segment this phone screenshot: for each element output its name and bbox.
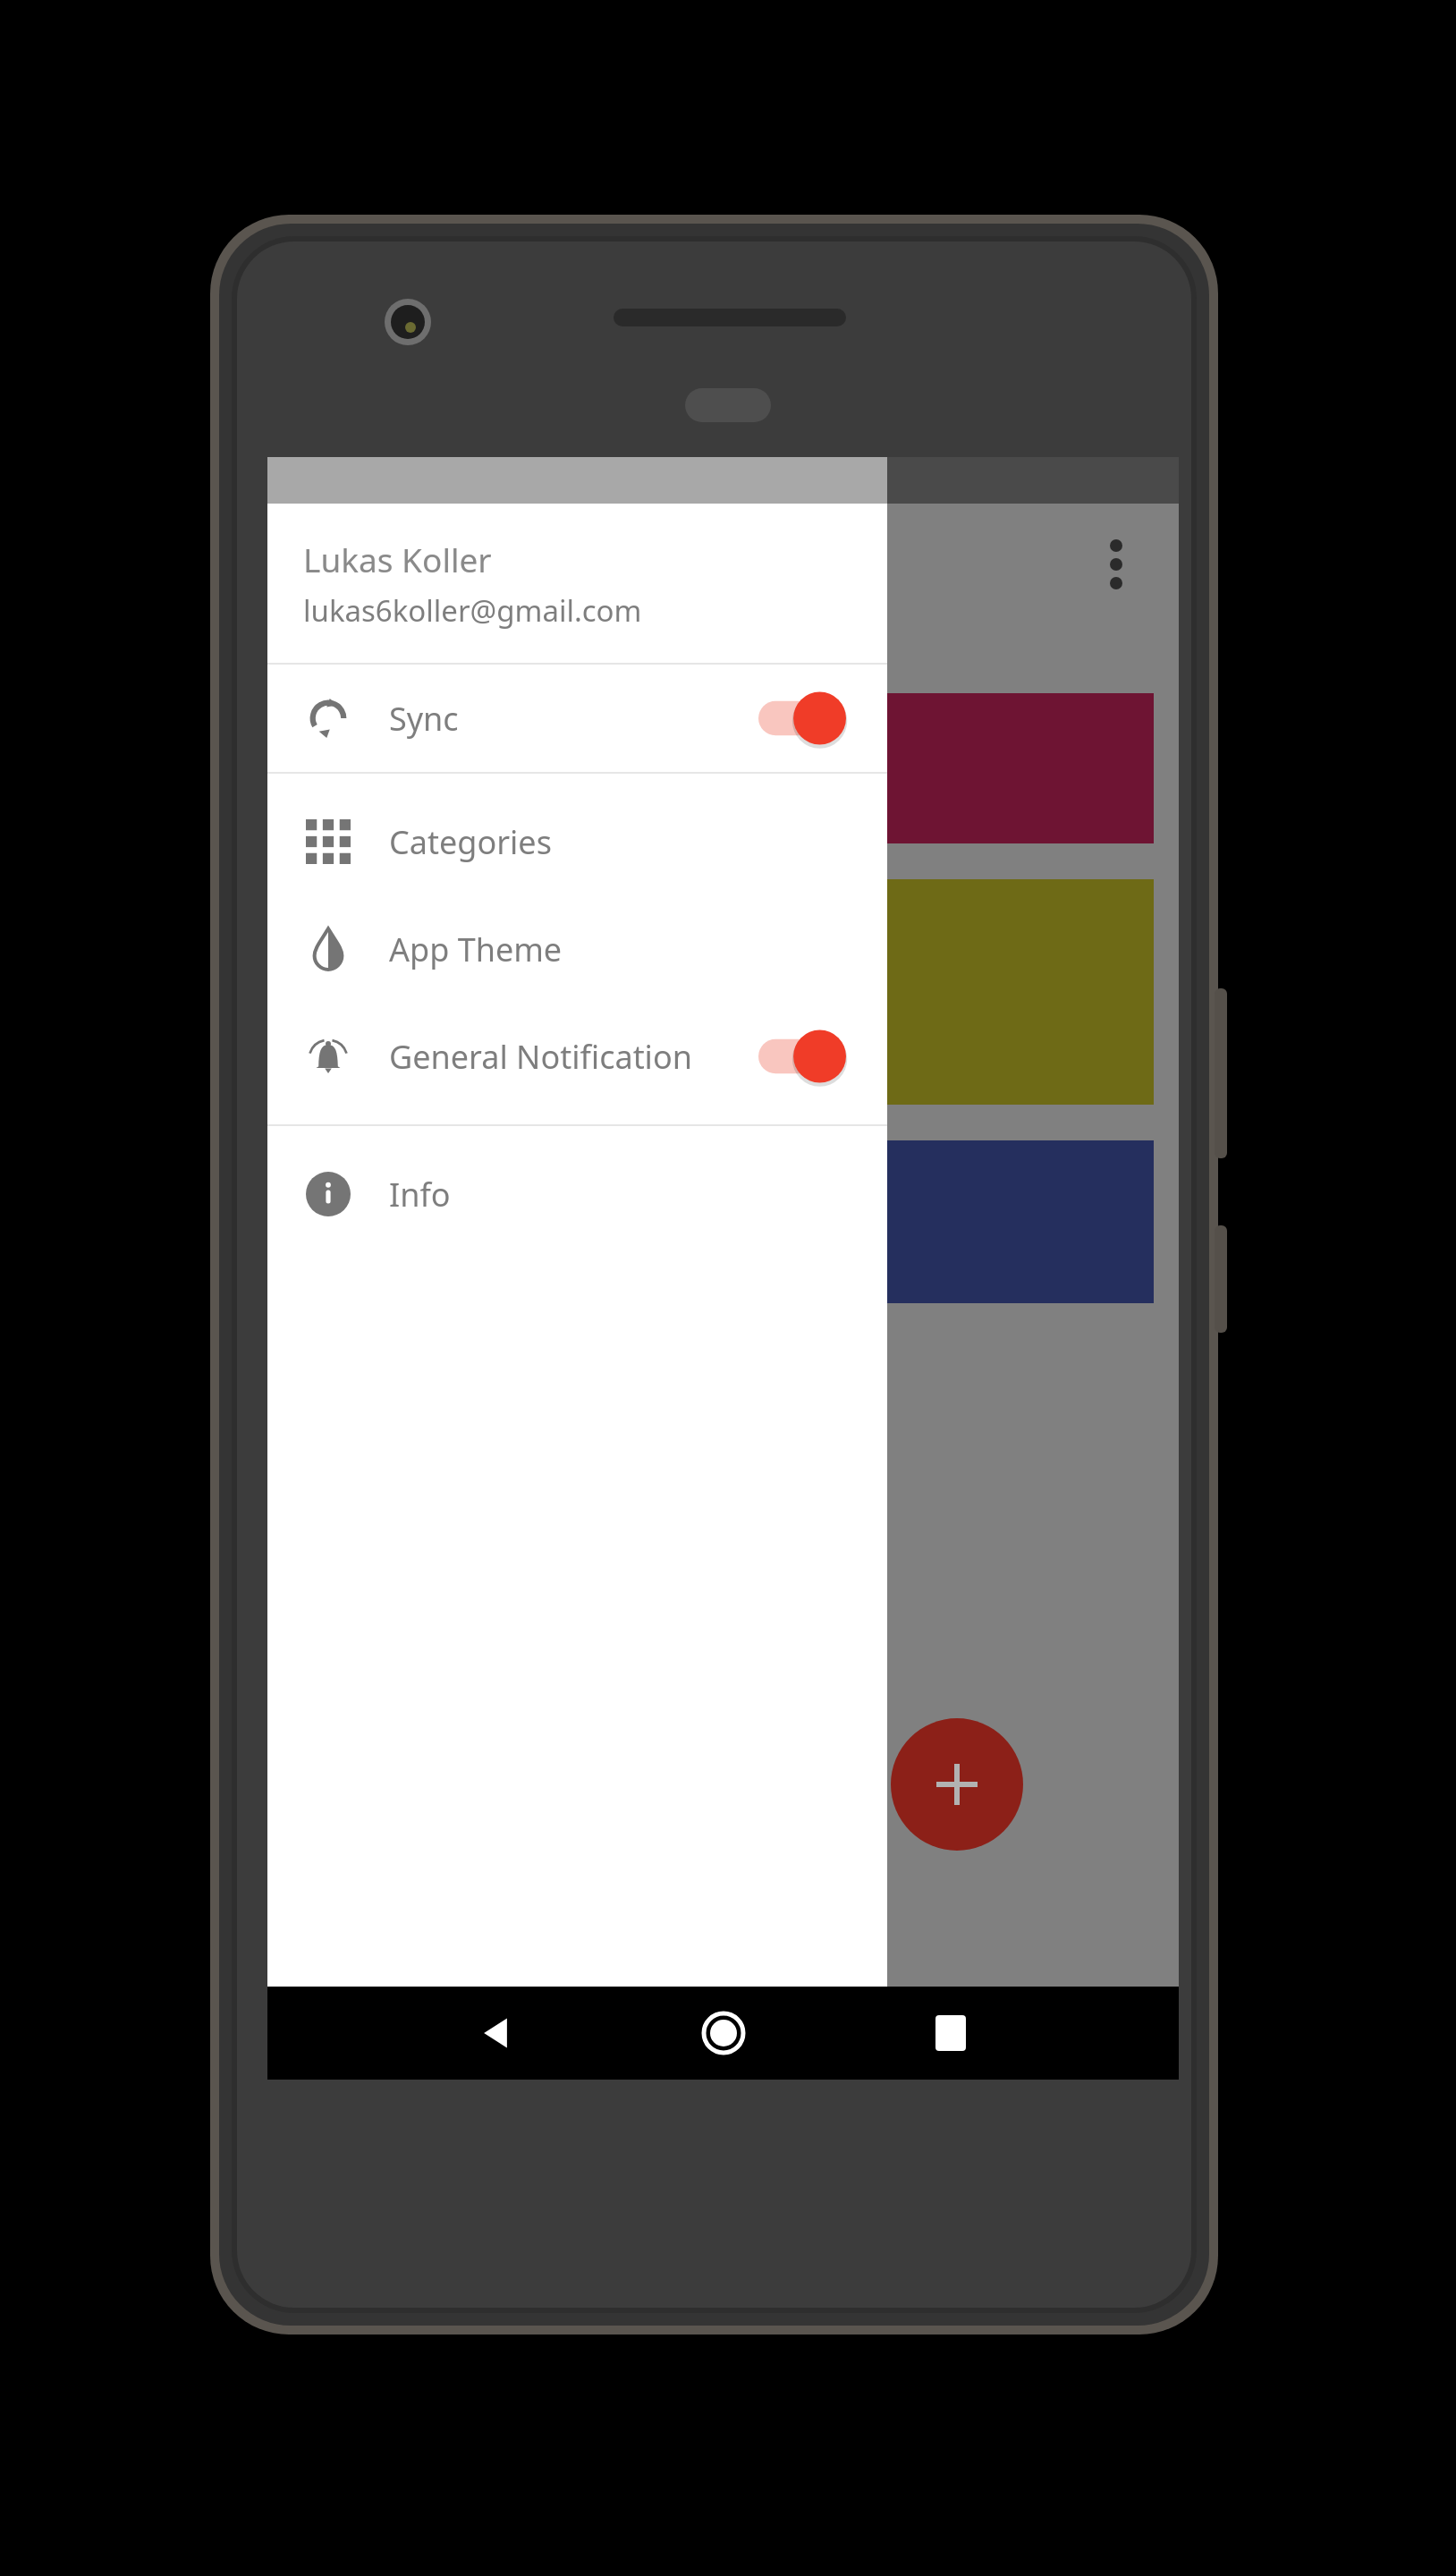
button[interactable]: Info [267, 1140, 887, 1248]
button[interactable]: Categories [267, 788, 887, 895]
button[interactable]: Toggle [758, 1028, 846, 1085]
button[interactable]: General Notification [267, 1003, 887, 1110]
button[interactable] [292, 693, 1154, 843]
staticText: General Notification [389, 1035, 692, 1079]
staticText: App Theme [389, 928, 563, 971]
staticText: lukas6koller@gmail.com [303, 590, 642, 631]
button[interactable]: Add [891, 1718, 1023, 1851]
button[interactable]: Sync [267, 665, 887, 772]
button[interactable]: Recent apps [904, 1987, 997, 2080]
button[interactable]: Back [449, 1987, 542, 2080]
staticText: Info [389, 1173, 451, 1216]
staticText: Categories [389, 820, 552, 864]
button[interactable] [292, 1140, 1154, 1303]
button[interactable] [292, 879, 1154, 1105]
button[interactable]: Home [677, 1987, 770, 2080]
button[interactable]: More options [1073, 521, 1159, 607]
button[interactable]: Lukas Koller [267, 504, 887, 663]
button[interactable]: App Theme [267, 895, 887, 1003]
staticText: Lukas Koller [303, 537, 492, 581]
staticText: Sync [389, 697, 459, 741]
button[interactable]: Toggle [758, 690, 846, 747]
